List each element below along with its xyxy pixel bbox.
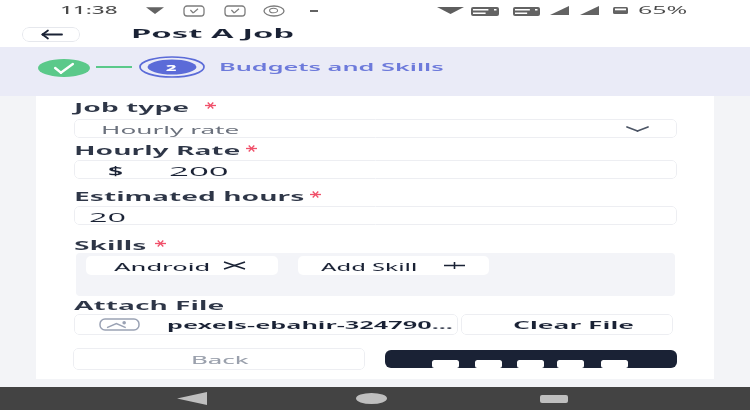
- button[interactable]: Back: [73, 348, 365, 370]
- staticText: Attach File: [74, 297, 224, 313]
- button[interactable]: Post a Job: [385, 350, 677, 368]
- button[interactable]: Hourly rate: [74, 119, 677, 138]
- button[interactable]: Back: [22, 27, 80, 42]
- staticText: Hourly Rate: [74, 142, 241, 158]
- staticText: Skills: [74, 237, 147, 253]
- staticText: Add Skill: [321, 259, 418, 274]
- button[interactable]: Home: [356, 387, 387, 410]
- button[interactable]: Recent apps: [540, 387, 568, 410]
- button[interactable]: Android: [86, 256, 278, 275]
- staticText: pexels-ebahir-324790...: [167, 317, 454, 332]
- staticText: Budgets and Skills: [219, 59, 444, 74]
- staticText: Android: [114, 259, 211, 274]
- staticText: Hourly rate: [101, 122, 241, 137]
- staticText: 200: [169, 163, 230, 179]
- staticText: 2: [166, 61, 178, 73]
- button[interactable]: 20: [74, 206, 677, 225]
- button[interactable]: $: [74, 160, 677, 179]
- staticText: Back: [191, 352, 250, 367]
- button[interactable]: pexels-ebahir-324790...: [74, 314, 458, 335]
- staticText: $: [108, 163, 123, 179]
- staticText: Clear File: [513, 317, 635, 332]
- button[interactable]: Step 2: [139, 56, 205, 78]
- staticText: Post A Job: [131, 24, 295, 42]
- button[interactable]: Back: [177, 387, 207, 410]
- staticText: 11:38: [60, 3, 118, 17]
- button[interactable]: Add Skill: [298, 256, 489, 275]
- button[interactable]: Step 1 done: [38, 59, 90, 77]
- staticText: 20: [89, 209, 127, 225]
- staticText: Estimated hours: [74, 188, 304, 204]
- button[interactable]: Clear File: [461, 314, 673, 335]
- staticText: 65%: [638, 3, 688, 17]
- staticText: Job type: [74, 99, 189, 115]
